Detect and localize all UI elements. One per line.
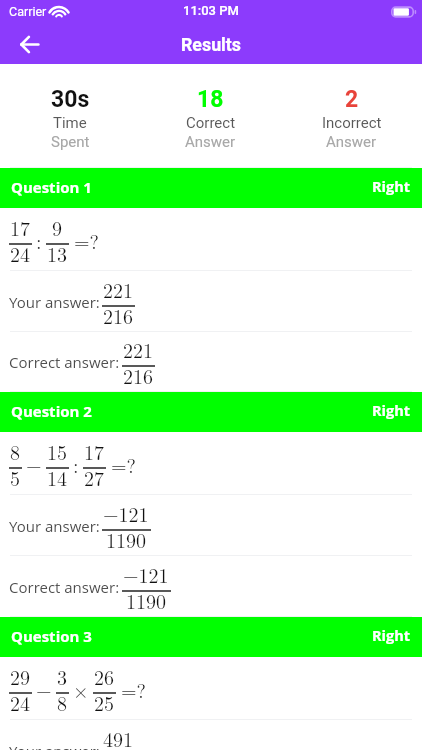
staticText: 5	[10, 463, 20, 491]
staticText: :	[36, 226, 42, 254]
button[interactable]: Back	[11, 26, 47, 62]
staticText: Carrier	[9, 4, 47, 19]
staticText: 17	[84, 437, 104, 465]
staticText: Results	[181, 34, 241, 55]
staticText: 9	[52, 213, 62, 241]
staticText: 27	[84, 463, 104, 491]
staticText: 25	[94, 688, 114, 716]
staticText: Your answer:	[9, 741, 100, 750]
staticText: 1190	[126, 586, 166, 614]
staticText: 491	[103, 724, 133, 750]
staticText: 30s	[51, 86, 90, 113]
staticText: Correct answer:	[9, 352, 120, 372]
staticText: 2	[345, 86, 359, 113]
staticText: 1190	[106, 525, 146, 553]
staticText: 17	[10, 213, 30, 241]
staticText: Your answer:	[9, 292, 100, 312]
staticText: Correct	[186, 114, 236, 132]
staticText: Right	[372, 401, 411, 421]
staticText: 8	[57, 688, 67, 716]
staticText: Answer	[326, 133, 377, 151]
staticText: 216	[123, 361, 153, 389]
staticText: ×	[73, 675, 89, 703]
staticText: Question 2	[11, 401, 92, 421]
staticText: Correct answer:	[9, 577, 120, 597]
staticText: 3	[57, 662, 67, 690]
staticText: −121	[123, 560, 169, 588]
staticText: =?	[111, 450, 136, 478]
staticText: Right	[372, 177, 411, 197]
staticText: :	[73, 450, 79, 478]
staticText: Incorrect	[322, 114, 382, 132]
staticText: 18	[197, 86, 224, 113]
staticText: 13	[47, 239, 67, 267]
staticText: 221	[103, 275, 133, 303]
staticText: 8	[10, 437, 20, 465]
staticText: Time	[53, 114, 87, 132]
staticText: Question 1	[11, 177, 92, 197]
staticText: −121	[103, 499, 149, 527]
staticText: Right	[372, 626, 411, 646]
staticText: =?	[121, 675, 146, 703]
staticText: Spent	[51, 133, 90, 151]
staticText: 15	[47, 437, 67, 465]
staticText: −	[26, 450, 42, 478]
staticText: 26	[94, 662, 114, 690]
staticText: Question 3	[11, 626, 92, 646]
staticText: −	[36, 675, 52, 703]
staticText: 24	[10, 239, 30, 267]
staticText: 29	[10, 662, 30, 690]
staticText: Answer	[185, 133, 236, 151]
staticText: 24	[10, 688, 30, 716]
staticText: 216	[103, 301, 133, 329]
staticText: Your answer:	[9, 516, 100, 536]
staticText: 221	[123, 335, 153, 363]
staticText: 11:03 PM	[183, 3, 239, 18]
staticText: 14	[47, 463, 67, 491]
staticText: =?	[74, 226, 99, 254]
